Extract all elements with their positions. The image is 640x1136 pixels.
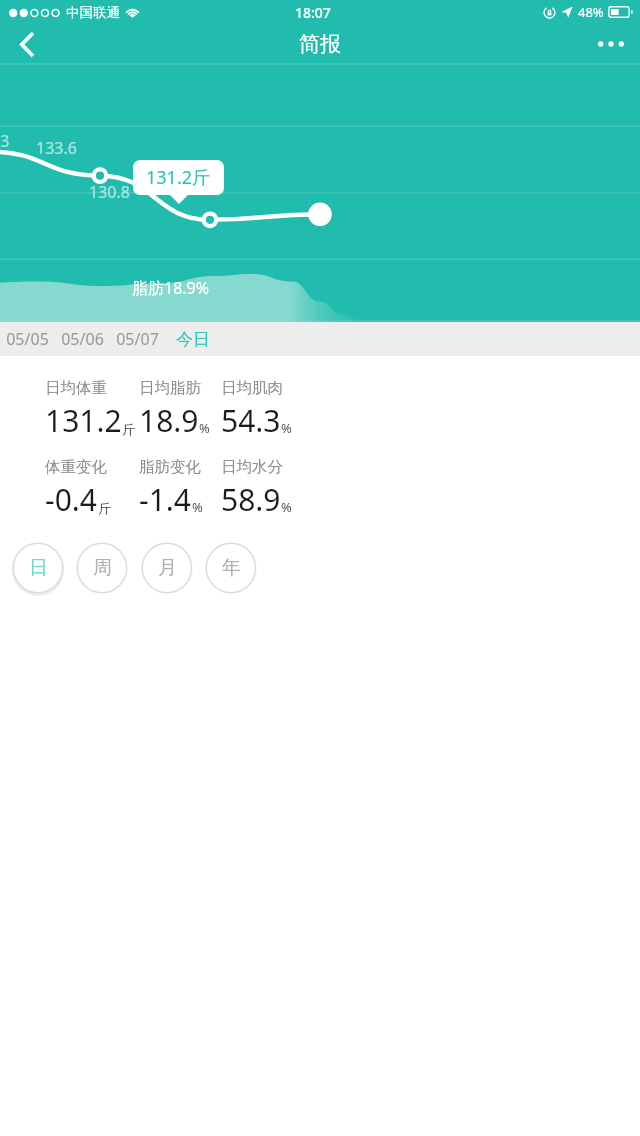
staticText: 58.9 xyxy=(221,479,281,519)
staticText: 05/05 xyxy=(6,328,49,350)
staticText: 脂肪18.9% xyxy=(132,277,210,299)
button[interactable]: 日均肌肉 xyxy=(221,378,313,440)
button[interactable]: Back xyxy=(0,24,52,64)
staticText: 年 xyxy=(222,556,241,580)
staticText: 今日 xyxy=(176,329,210,350)
staticText: 日 xyxy=(29,556,48,580)
staticText: 48% xyxy=(578,3,604,21)
staticText: 18.9 xyxy=(139,400,199,440)
staticText: -0.4 xyxy=(45,479,98,519)
staticText: 05/06 xyxy=(61,328,104,350)
staticText: 133.6 xyxy=(36,137,77,159)
staticText: 日均肌肉 xyxy=(221,378,283,398)
button[interactable]: 年 xyxy=(205,542,257,594)
button[interactable]: 今日 xyxy=(165,322,220,356)
staticText: 131.2 xyxy=(45,400,122,440)
staticText: 130.8 xyxy=(89,181,130,203)
staticText: 日均体重 xyxy=(45,378,107,398)
button[interactable]: 05/06 xyxy=(55,322,110,356)
staticText: 05/07 xyxy=(116,328,159,350)
button[interactable]: 日均脂肪 xyxy=(139,378,231,440)
staticText: % xyxy=(199,419,210,437)
button[interactable]: 日均体重 xyxy=(45,378,137,440)
staticText: 斤 xyxy=(122,421,135,437)
staticText: 54.3 xyxy=(221,400,281,440)
button[interactable]: 脂肪变化 xyxy=(139,457,231,519)
button[interactable]: 05/05 xyxy=(0,322,55,356)
staticText: -1.4 xyxy=(139,479,192,519)
staticText: 简报 xyxy=(299,31,341,57)
button[interactable]: 月 xyxy=(141,542,193,594)
staticText: 脂肪变化 xyxy=(139,457,201,477)
staticText: 日均脂肪 xyxy=(139,378,201,398)
button[interactable]: 日均水分 xyxy=(221,457,313,519)
button[interactable]: 05/07 xyxy=(110,322,165,356)
staticText: % xyxy=(192,498,203,516)
staticText: 日均水分 xyxy=(221,457,283,477)
staticText: 月 xyxy=(158,556,177,580)
staticText: 体重变化 xyxy=(45,457,107,477)
button[interactable]: 131.2斤 xyxy=(133,160,224,195)
staticText: .3 xyxy=(0,130,10,152)
staticText: 周 xyxy=(93,556,112,580)
staticText: % xyxy=(281,498,292,516)
staticText: 18:07 xyxy=(295,3,331,22)
button[interactable]: More options xyxy=(582,24,640,64)
staticText: 131.2斤 xyxy=(146,165,211,190)
button[interactable]: 日 xyxy=(12,542,64,594)
staticText: 斤 xyxy=(98,500,111,516)
button[interactable]: 体重变化 xyxy=(45,457,137,519)
button[interactable]: 周 xyxy=(76,542,128,594)
staticText: % xyxy=(281,419,292,437)
staticText: 中国联通 xyxy=(66,4,120,21)
